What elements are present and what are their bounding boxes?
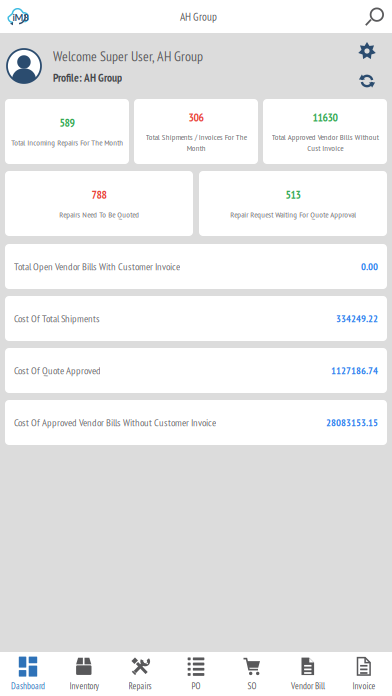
staticText: 0.00	[361, 260, 378, 273]
button[interactable]: 513	[199, 171, 387, 236]
button[interactable]: Cost Of Total Shipments	[5, 296, 387, 341]
staticText: Cost Of Quote Approved	[14, 364, 101, 377]
button[interactable]: Refresh	[358, 72, 376, 90]
staticText: Repairs Need To Be Quoted	[59, 209, 139, 220]
staticText: Repair Request Waiting For Quote Approva…	[230, 209, 356, 220]
staticText: 28083153.15	[326, 416, 378, 429]
staticText: Welcome Super User, AH Group	[53, 47, 203, 65]
button[interactable]: Dashboard	[0, 652, 56, 696]
staticText: 11630	[312, 110, 337, 124]
staticText: AH Group	[180, 9, 217, 24]
button[interactable]: Settings	[358, 42, 376, 60]
staticText: Total Shipments / Invoices For The Month	[145, 131, 246, 153]
staticText: Repairs	[128, 680, 151, 692]
button[interactable]: SO	[224, 652, 280, 696]
button[interactable]: Cost Of Quote Approved	[5, 348, 387, 393]
button[interactable]: Cost Of Approved Vendor Bills Without Cu…	[5, 400, 387, 445]
staticText: Total Incoming Repairs For The Month	[11, 137, 123, 148]
button[interactable]: 11630	[263, 99, 387, 164]
staticText: Cost Of Approved Vendor Bills Without Cu…	[14, 416, 216, 429]
button[interactable]: PO	[168, 652, 224, 696]
button[interactable]: Search	[365, 6, 392, 27]
staticText: 513	[285, 187, 300, 202]
staticText: 589	[59, 115, 74, 130]
button[interactable]: Total Open Vendor Bills With Customer In…	[5, 244, 387, 289]
staticText: Vendor Bill	[291, 680, 325, 692]
staticText: PO	[191, 680, 200, 692]
staticText: 788	[91, 187, 106, 202]
staticText: iM3	[13, 12, 29, 23]
staticText: 306	[188, 110, 203, 124]
staticText: Profile: AH Group	[53, 70, 122, 85]
button[interactable]: 589	[5, 99, 129, 164]
staticText: Inventory	[69, 680, 98, 692]
staticText: Total Open Vendor Bills With Customer In…	[14, 260, 180, 273]
staticText: 334249.22	[336, 312, 378, 325]
staticText: Invoice	[352, 680, 375, 692]
button[interactable]: Invoice	[336, 652, 392, 696]
button[interactable]: 306	[134, 99, 258, 164]
button[interactable]: Repairs	[112, 652, 168, 696]
staticText: Cost Of Total Shipments	[14, 312, 100, 325]
button[interactable]: 788	[5, 171, 193, 236]
staticText: SO	[247, 680, 256, 692]
button[interactable]: Vendor Bill	[280, 652, 336, 696]
button[interactable]: Inventory	[56, 652, 112, 696]
staticText: 1127186.74	[331, 364, 378, 377]
staticText: Dashboard	[11, 680, 45, 692]
staticText: Total Approved Vendor Bills Without Cust…	[271, 131, 378, 153]
